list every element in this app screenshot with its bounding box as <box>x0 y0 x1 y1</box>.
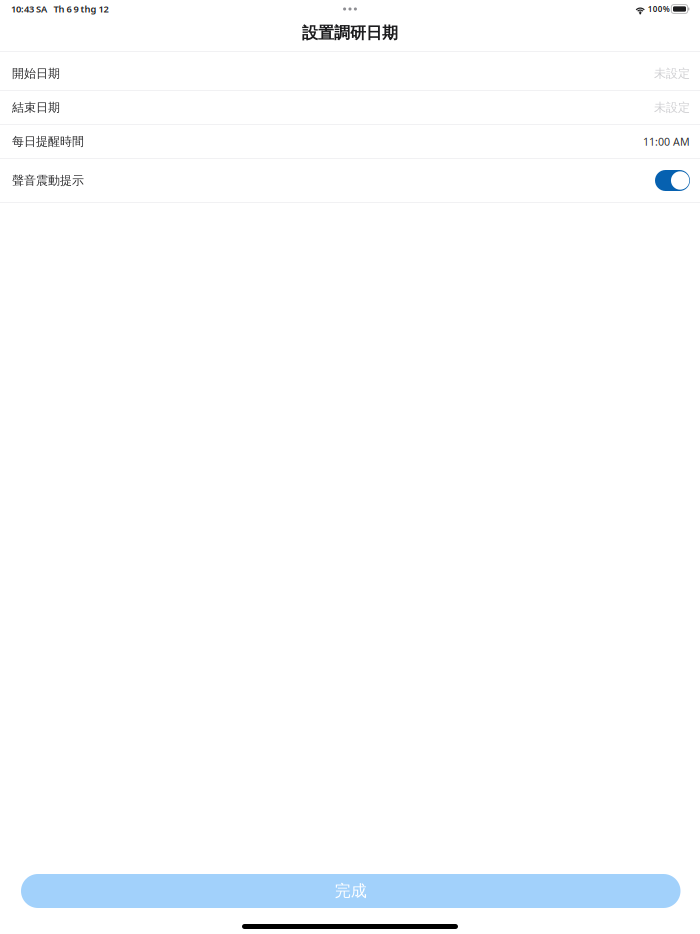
staticText: 開始日期 <box>12 66 60 81</box>
staticText: 設置調研日期 <box>302 23 398 43</box>
staticText: 未設定 <box>654 66 690 81</box>
button[interactable]: 完成 <box>21 874 680 908</box>
staticText: 100% <box>648 4 670 14</box>
staticText: 10:43 SA <box>11 3 47 15</box>
staticText: 結束日期 <box>12 100 60 115</box>
staticText: 完成 <box>335 881 367 901</box>
staticText: 每日提醒時間 <box>12 134 84 149</box>
button[interactable]: 結束日期 <box>0 91 700 125</box>
staticText: 11:00 AM <box>643 134 690 149</box>
button[interactable]: 每日提醒時間 <box>0 125 700 159</box>
staticText: Th 6 9 thg 12 <box>53 3 108 15</box>
button[interactable]: 聲音震動提示 <box>0 159 700 203</box>
staticText: 未設定 <box>654 100 690 115</box>
staticText: 聲音震動提示 <box>12 173 84 188</box>
button[interactable]: 開始日期 <box>0 57 700 91</box>
